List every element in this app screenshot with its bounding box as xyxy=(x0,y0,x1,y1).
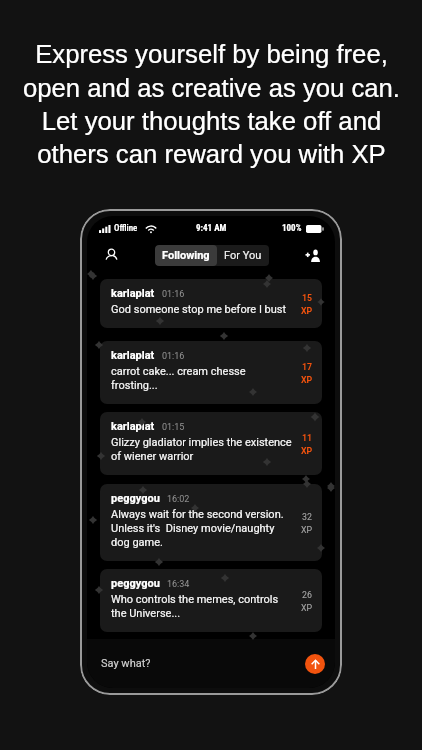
staticText: 01:16 xyxy=(162,351,185,362)
staticText: carrot cake... cream chesse frosting... xyxy=(111,365,246,392)
button[interactable]: Add friend xyxy=(301,243,325,267)
button[interactable]: karlaplat xyxy=(100,341,322,404)
staticText: Express yourself by being free, open and… xyxy=(23,40,400,168)
button[interactable]: For You xyxy=(217,245,269,266)
staticText: 32 xyxy=(302,512,312,522)
button[interactable]: Following xyxy=(155,245,217,266)
staticText: 01:16 xyxy=(162,289,185,300)
staticText: 9:41 AM xyxy=(196,223,227,234)
button[interactable]: karlaplat xyxy=(100,412,322,475)
staticText: XP xyxy=(301,375,313,385)
staticText: 16:02 xyxy=(167,494,190,505)
staticText: karlaplat xyxy=(111,420,155,433)
staticText: 11 xyxy=(302,433,313,443)
staticText: 16:34 xyxy=(167,579,190,590)
staticText: XP xyxy=(301,603,313,613)
button[interactable]: peggygou xyxy=(100,569,322,632)
staticText: For You xyxy=(224,249,262,262)
staticText: Always wait for the second version. Unle… xyxy=(111,508,284,549)
staticText: peggygou xyxy=(111,577,160,590)
staticText: 01:15 xyxy=(162,422,185,433)
staticText: 15 xyxy=(302,293,313,303)
staticText: 26 xyxy=(302,590,312,600)
staticText: God someone stop me before I bust xyxy=(111,303,287,316)
staticText: Following xyxy=(162,249,210,262)
staticText: XP xyxy=(301,306,313,316)
staticText: XP xyxy=(301,446,313,456)
staticText: Who controls the memes, controls the Uni… xyxy=(111,593,279,620)
button[interactable]: Profile xyxy=(99,243,123,267)
staticText: karlaplat xyxy=(111,287,155,300)
staticText: Say what? xyxy=(101,657,151,670)
staticText: peggygou xyxy=(111,492,160,505)
staticText: karlaplat xyxy=(111,349,155,362)
staticText: XP xyxy=(301,525,313,535)
staticText: 100% xyxy=(282,223,302,234)
button[interactable]: karlaplat xyxy=(100,279,322,328)
button[interactable]: Send xyxy=(305,654,325,674)
staticText: 17 xyxy=(302,362,313,372)
staticText: Offline xyxy=(114,223,138,234)
staticText: Glizzy gladiator implies the existence o… xyxy=(111,436,292,463)
button[interactable]: peggygou xyxy=(100,484,322,561)
